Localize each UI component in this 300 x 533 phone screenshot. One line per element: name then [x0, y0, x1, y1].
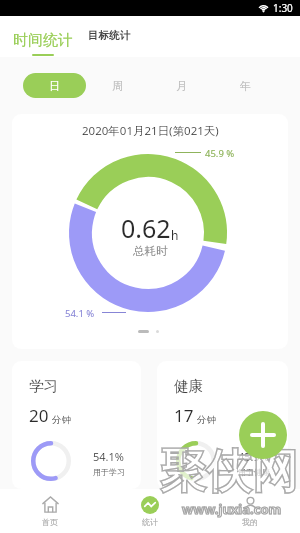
staticText: 用于健康 — [238, 467, 270, 477]
button[interactable]: 日 — [23, 73, 86, 98]
staticText: 总耗时 — [133, 244, 168, 258]
staticText: 分钟 — [197, 414, 216, 426]
staticText: 时间统计 — [13, 31, 73, 50]
staticText: 年 — [240, 79, 251, 93]
staticText: 0.62 — [121, 211, 171, 245]
staticText: www.juxia.com — [182, 500, 282, 518]
button[interactable]: 周 — [86, 73, 149, 98]
staticText: 20 — [29, 404, 49, 427]
button[interactable]: 健康 — [157, 361, 288, 489]
staticText: www.juxia.com — [182, 500, 282, 518]
button[interactable]: 时间统计 — [6, 16, 80, 57]
staticText: 健康 — [174, 377, 203, 395]
staticText: 用于学习 — [93, 467, 125, 477]
staticText: 2020年01月21日(第021天) — [82, 123, 219, 139]
staticText: 54.1% — [93, 449, 124, 464]
staticText: 统计 — [142, 517, 158, 527]
button[interactable]: 目标统计 — [82, 16, 136, 57]
button[interactable]: 年 — [213, 73, 277, 98]
staticText: 我的 — [242, 517, 258, 527]
staticText: 目标统计 — [88, 29, 130, 42]
staticText: 45.9 % — [205, 147, 235, 160]
button[interactable]: 月 — [149, 73, 213, 98]
staticText: 首页 — [42, 517, 58, 527]
staticText: 学习 — [29, 377, 58, 395]
button[interactable]: 统计 — [100, 496, 200, 527]
staticText: h — [171, 227, 179, 243]
staticText: 月 — [176, 79, 187, 93]
staticText: 45.9% — [238, 449, 269, 464]
staticText: 1:30 — [273, 1, 293, 15]
staticText: 聚侠网 — [160, 443, 298, 501]
staticText: 周 — [112, 79, 123, 93]
staticText: 日 — [49, 79, 60, 93]
staticText: 17 — [174, 404, 194, 427]
button[interactable]: Add record — [239, 411, 287, 459]
staticText: 54.1 % — [65, 307, 95, 320]
staticText: 分钟 — [52, 414, 71, 426]
button[interactable]: 首页 — [0, 496, 100, 527]
staticText: 聚侠网 — [160, 443, 298, 501]
button[interactable]: 学习 — [12, 361, 141, 489]
button[interactable]: 我的 — [200, 496, 300, 527]
